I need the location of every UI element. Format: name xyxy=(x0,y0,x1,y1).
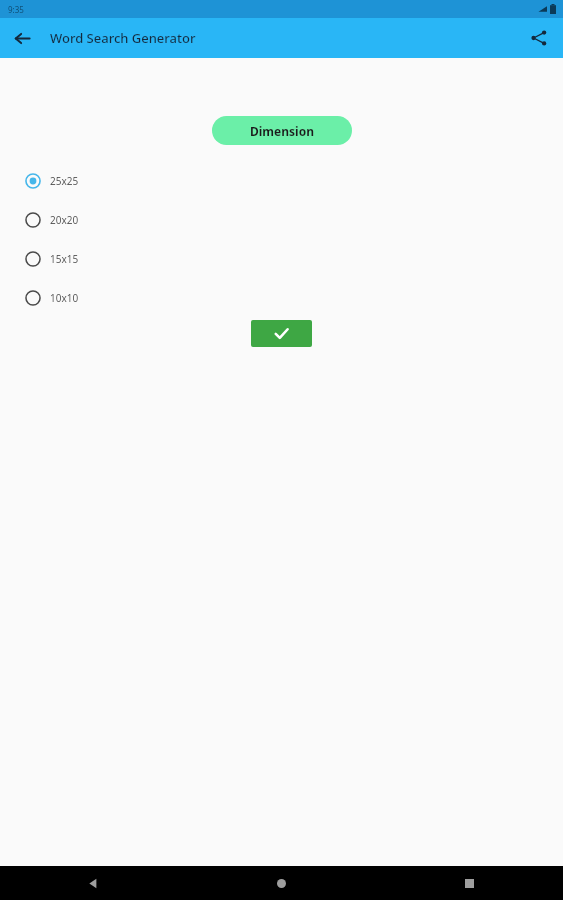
button[interactable]: Confirm xyxy=(251,320,312,347)
button[interactable]: Back xyxy=(0,866,187,900)
staticText: 9:35 xyxy=(8,4,24,15)
button[interactable]: 20x20 xyxy=(0,200,563,239)
staticText: Word Search Generator xyxy=(50,29,196,47)
staticText: 25x25 xyxy=(50,174,79,188)
button[interactable]: 10x10 xyxy=(0,278,563,317)
staticText: Dimension xyxy=(250,123,314,139)
button[interactable]: 15x15 xyxy=(0,239,563,278)
staticText: 15x15 xyxy=(50,252,79,266)
button[interactable]: Home xyxy=(187,866,375,900)
button[interactable]: 25x25 xyxy=(0,161,563,200)
button[interactable]: Dimension xyxy=(212,116,352,145)
button[interactable]: Recent apps xyxy=(375,866,563,900)
staticText: 10x10 xyxy=(50,291,79,305)
button[interactable]: Share xyxy=(523,22,555,54)
staticText: 20x20 xyxy=(50,213,79,227)
button[interactable]: Back xyxy=(6,22,38,54)
